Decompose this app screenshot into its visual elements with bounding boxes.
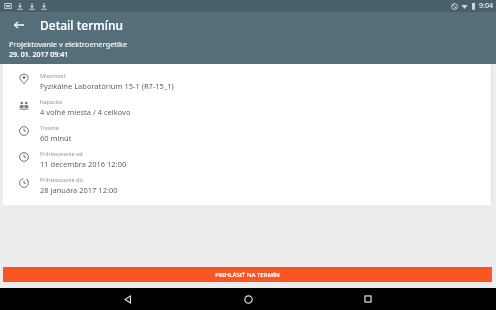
staticText: Detail termínu (40, 17, 123, 33)
button[interactable]: Prihlasovanie do (3, 176, 491, 195)
staticText: 60 minút (40, 133, 72, 143)
staticText: 29. 01. 2017 09:41 (9, 50, 69, 60)
button[interactable]: Kapacita (3, 98, 491, 117)
staticText: Trvanie (40, 124, 59, 131)
button[interactable]: Miestnosť (3, 72, 491, 91)
staticText: 11 decembra 2016 12:00 (40, 159, 127, 169)
button[interactable]: PRIHLÁSIŤ NA TERMÍN (3, 267, 492, 282)
button[interactable]: Recent apps (308, 288, 428, 310)
staticText: PRIHLÁSIŤ NA TERMÍN (215, 271, 280, 279)
button[interactable]: Prihlasovanie od (3, 150, 491, 169)
staticText: Prihlasovanie od (40, 150, 83, 157)
staticText: 4 voľné miesta / 4 celkovo (40, 107, 131, 117)
staticText: 9:04 (479, 1, 493, 11)
button[interactable]: Back (68, 288, 188, 310)
staticText: Projektovanie v elektroenergetike (9, 39, 128, 49)
staticText: 28 januára 2017 12:00 (40, 185, 118, 195)
staticText: Kapacita (40, 98, 63, 105)
staticText: Prihlasovanie do (40, 176, 83, 183)
button[interactable]: Trvanie (3, 124, 491, 143)
button[interactable]: Back (8, 14, 30, 36)
button[interactable]: Home (188, 288, 308, 310)
staticText: Fyzikálne Laboratórium 15-1 (R7-15_1) (40, 81, 174, 91)
staticText: Miestnosť (40, 72, 66, 79)
